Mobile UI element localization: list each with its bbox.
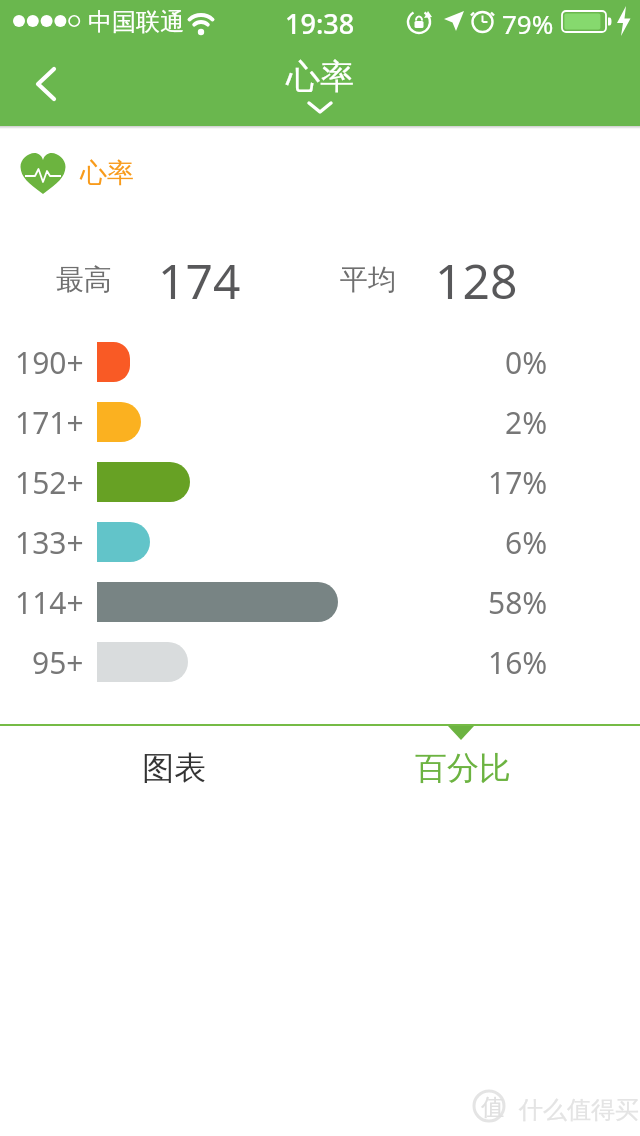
staticText: 什么值得买 [519, 1095, 639, 1125]
staticText: 中国联通 [88, 7, 184, 37]
staticText: 2% [505, 402, 548, 443]
staticText: 58% [488, 582, 548, 623]
staticText: 16% [488, 642, 548, 683]
staticText: 6% [505, 522, 548, 563]
staticText: 95+ [32, 642, 84, 683]
staticText: 128 [435, 248, 518, 313]
button[interactable]: 百分比 [320, 726, 640, 806]
staticText: 190+ [15, 342, 84, 383]
staticText: 174 [158, 248, 241, 313]
staticText: 值 [481, 1093, 504, 1122]
button[interactable] [306, 101, 334, 115]
staticText: 19:38 [285, 5, 355, 42]
button[interactable]: 171+ [0, 392, 640, 452]
button[interactable]: 95+ [0, 632, 640, 692]
button[interactable]: 190+ [0, 332, 640, 392]
staticText: 平均 [340, 262, 396, 297]
staticText: 152+ [15, 462, 84, 503]
button[interactable]: 133+ [0, 512, 640, 572]
staticText: 图表 [142, 748, 206, 788]
staticText: 心率 [286, 55, 354, 98]
staticText: 最高 [56, 262, 112, 297]
staticText: 百分比 [415, 748, 511, 788]
staticText: 0% [505, 342, 548, 383]
staticText: 114+ [15, 582, 84, 623]
staticText: 79% [502, 6, 554, 41]
staticText: 133+ [15, 522, 84, 563]
button[interactable] [20, 56, 72, 112]
staticText: 17% [488, 462, 548, 503]
button[interactable]: 心率 [20, 150, 134, 196]
button[interactable]: 114+ [0, 572, 640, 632]
button[interactable]: 图表 [0, 726, 320, 806]
staticText: 心率 [80, 156, 134, 190]
button[interactable]: 152+ [0, 452, 640, 512]
staticText: 171+ [15, 402, 84, 443]
